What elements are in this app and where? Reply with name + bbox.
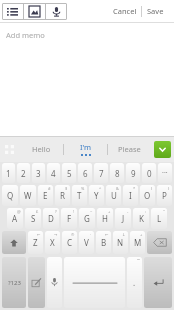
button[interactable]: Cancel: [109, 2, 141, 20]
staticText: Add memo: [6, 30, 45, 40]
staticText: L: [157, 213, 162, 224]
button[interactable]: ): [157, 185, 172, 206]
button[interactable]: ": [151, 208, 167, 229]
button[interactable]: ↓: [113, 231, 128, 254]
button[interactable]: 8: [110, 163, 124, 183]
staticText: A: [12, 213, 18, 224]
button[interactable]: Bulleted list: [2, 3, 23, 20]
button[interactable]: W: [20, 185, 36, 206]
staticText: N: [117, 237, 124, 248]
staticText: *: [133, 186, 136, 191]
button[interactable]: @: [7, 208, 23, 229]
button[interactable]: 4: [47, 163, 60, 183]
staticText: S: [31, 213, 36, 224]
staticText: Please: [118, 144, 141, 154]
button[interactable]: 7: [94, 163, 108, 183]
button[interactable]: Q: [2, 185, 18, 206]
staticText: .: [133, 277, 136, 288]
button[interactable]: 6: [78, 163, 92, 183]
staticText: O: [144, 190, 151, 201]
button[interactable]: Keyboard options: [3, 143, 16, 156]
button[interactable]: More symbols: [158, 163, 172, 183]
button[interactable]: -: [115, 208, 131, 229]
button[interactable]: ·: [79, 231, 94, 254]
staticText: K: [139, 213, 144, 224]
staticText: (: [151, 186, 153, 191]
staticText: W: [24, 190, 32, 201]
button[interactable]: ←: [96, 231, 111, 254]
staticText: X: [50, 237, 55, 248]
button[interactable]: &: [106, 185, 121, 206]
button[interactable]: ©: [62, 231, 77, 254]
staticText: 9: [131, 168, 136, 179]
button[interactable]: *: [123, 185, 138, 206]
button[interactable]: +: [97, 208, 113, 229]
button[interactable]: Handwriting: [28, 257, 45, 308]
button[interactable]: Voice input: [46, 3, 67, 20]
button[interactable]: (: [140, 185, 155, 206]
button[interactable]: Save: [142, 2, 169, 20]
button[interactable]: +: [130, 231, 145, 254]
staticText: &: [116, 186, 119, 191]
button[interactable]: I'm: [64, 136, 107, 162]
button[interactable]: 5: [62, 163, 76, 183]
staticText: 6: [83, 168, 88, 179]
button[interactable]: ~: [79, 208, 95, 229]
staticText: U: [111, 190, 117, 201]
button[interactable]: →: [45, 231, 60, 254]
button[interactable]: ?: [43, 208, 59, 229]
staticText: Save: [147, 6, 164, 16]
staticText: H: [102, 213, 108, 224]
button[interactable]: Hello: [20, 136, 63, 162]
button[interactable]: !: [61, 208, 77, 229]
button[interactable]: ←: [28, 231, 43, 254]
staticText: 4: [51, 168, 56, 179]
staticText: Z: [33, 237, 38, 248]
button[interactable]: £: [25, 208, 41, 229]
button[interactable]: Shift: [2, 231, 26, 254]
staticText: D: [48, 213, 54, 224]
button[interactable]: Please: [108, 136, 151, 162]
button[interactable]: ””: [127, 257, 142, 308]
button[interactable]: Enter: [144, 257, 172, 308]
button[interactable]: Symbols: [2, 257, 26, 308]
staticText: 7: [99, 168, 104, 179]
staticText: ·: [90, 232, 92, 237]
button[interactable]: Insert image: [24, 3, 45, 20]
button[interactable]: Backspace: [147, 231, 172, 254]
button[interactable]: $: [55, 185, 70, 206]
staticText: ↓: [122, 232, 126, 237]
button[interactable]: Add memo: [0, 23, 174, 136]
staticText: Q: [7, 190, 14, 201]
staticText: B: [101, 237, 107, 248]
staticText: 0: [147, 168, 152, 179]
button[interactable]: 0: [142, 163, 156, 183]
button[interactable]: 2: [17, 163, 30, 183]
staticText: P: [162, 190, 167, 201]
staticText: ?: [55, 209, 57, 214]
staticText: 2: [21, 168, 26, 179]
button[interactable]: ^: [89, 185, 104, 206]
button[interactable]: #: [38, 185, 53, 206]
button[interactable]: %: [72, 185, 87, 206]
button[interactable]: 1: [2, 163, 15, 183]
staticText: ": [163, 209, 165, 214]
button[interactable]: Voice input: [47, 257, 62, 308]
button[interactable]: Space: [64, 257, 125, 308]
staticText: Hello: [32, 144, 51, 154]
staticText: F: [67, 213, 72, 224]
staticText: C: [67, 237, 73, 248]
staticText: 1: [6, 168, 11, 179]
staticText: ?123: [8, 279, 21, 287]
button[interactable]: 9: [126, 163, 140, 183]
staticText: T: [77, 190, 82, 201]
staticText: @: [17, 209, 21, 214]
staticText: Cancel: [113, 6, 137, 16]
button[interactable]: 3: [32, 163, 45, 183]
staticText: ””: [137, 258, 140, 263]
staticText: +: [108, 209, 111, 214]
staticText: ←: [37, 232, 41, 237]
staticText: G: [84, 213, 90, 224]
button[interactable]: :: [133, 208, 149, 229]
button[interactable]: Confirm: [154, 141, 171, 158]
